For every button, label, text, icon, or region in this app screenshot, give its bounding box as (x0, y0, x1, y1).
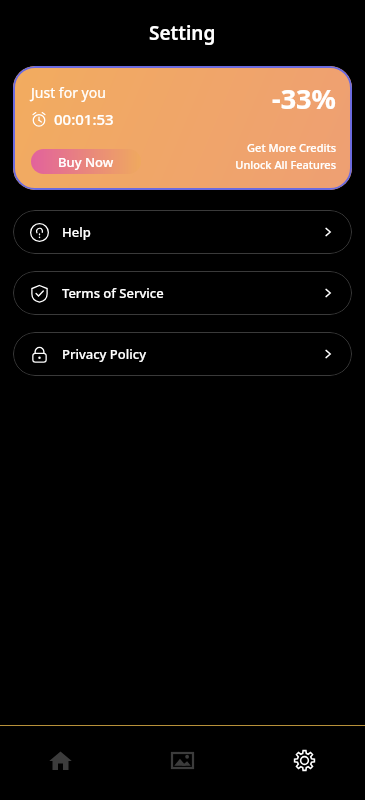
staticText: Buy Now (58, 153, 114, 171)
staticText: Get More Credits (247, 140, 336, 155)
button[interactable]: Privacy Policy (13, 332, 352, 376)
button[interactable]: Terms of Service (13, 271, 352, 315)
button[interactable]: Settings (243, 726, 365, 800)
staticText: Terms of Service (62, 284, 164, 302)
button[interactable]: Just for you (13, 66, 352, 190)
staticText: 00:01:53 (54, 109, 114, 129)
staticText: Help (62, 223, 91, 241)
staticText: Privacy Policy (62, 345, 146, 363)
button[interactable]: Home (0, 726, 121, 800)
button[interactable]: Gallery (121, 726, 243, 800)
staticText: Just for you (31, 83, 106, 102)
button[interactable]: Help (13, 210, 352, 254)
staticText: -33% (272, 80, 336, 117)
staticText: Unlock All Features (235, 157, 336, 172)
staticText: Setting (149, 20, 216, 46)
button[interactable]: Buy Now (31, 149, 141, 174)
